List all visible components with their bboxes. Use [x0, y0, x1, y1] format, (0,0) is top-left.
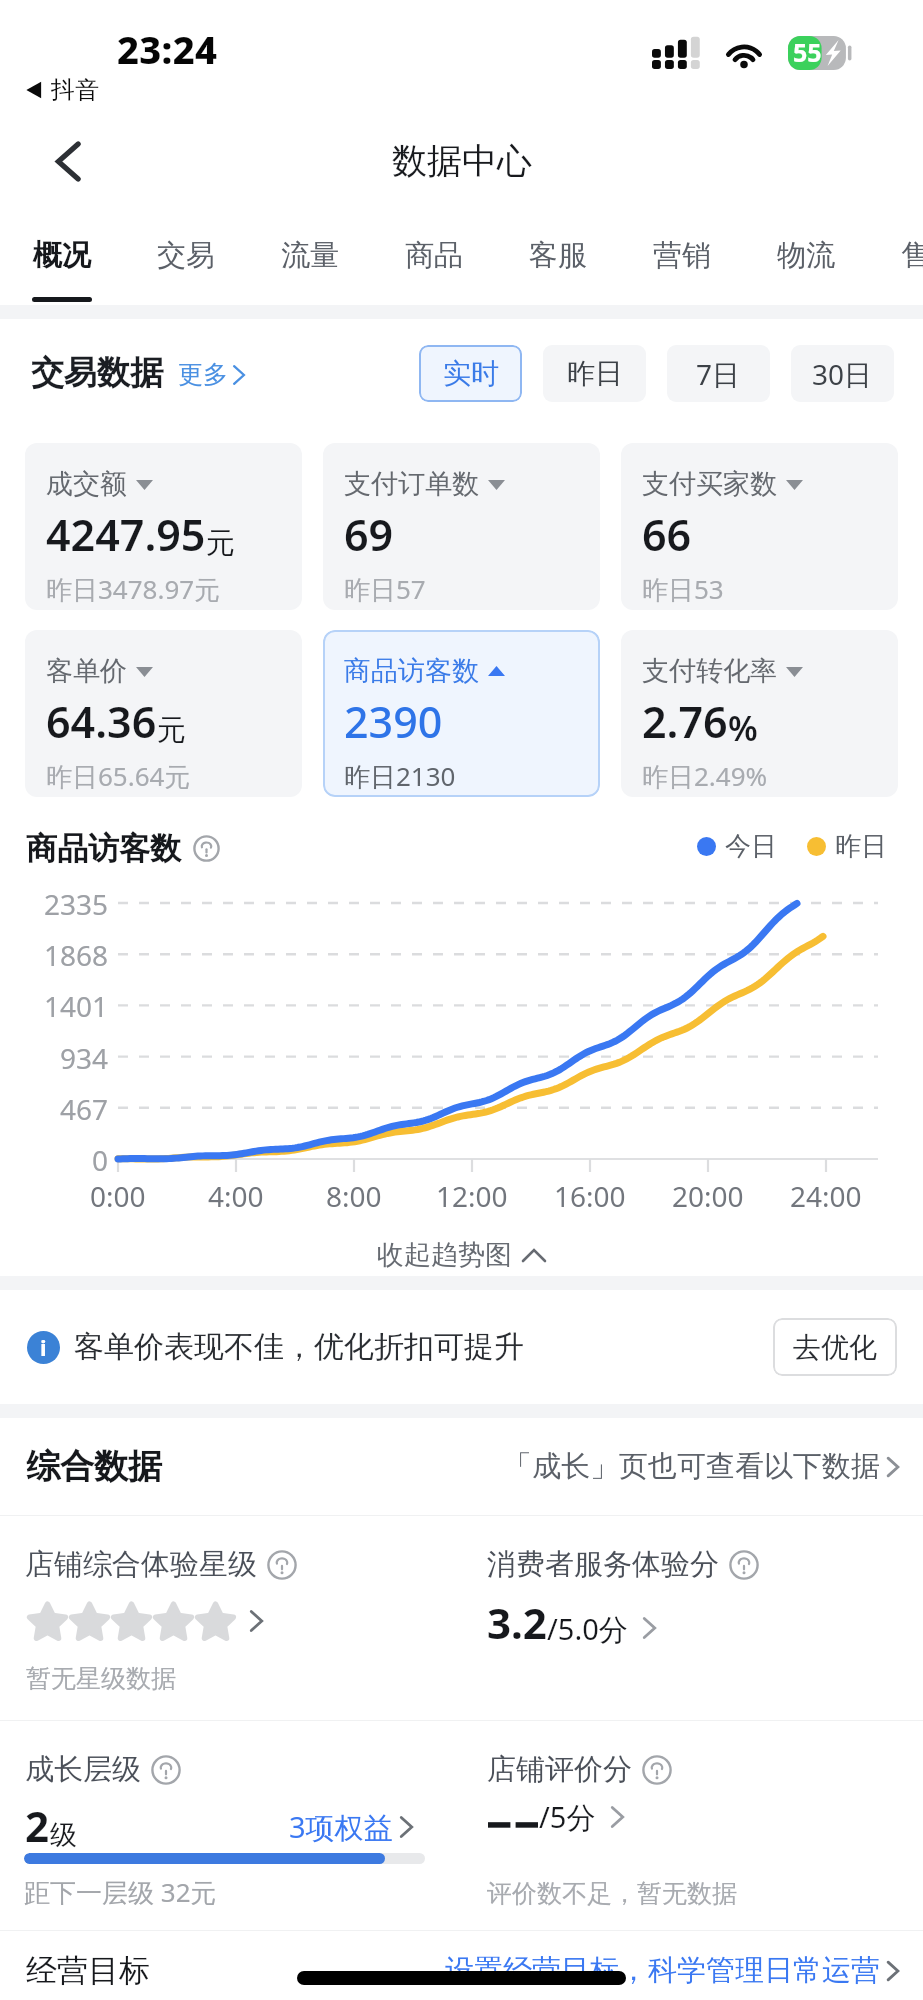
button[interactable]: 更多 [178, 359, 246, 390]
staticText: 评价数不足，暂无数据 [487, 1878, 737, 1909]
staticText: 概况 [33, 237, 91, 274]
staticText: 昨日53 [642, 571, 724, 607]
staticText: 支付订单数 [344, 467, 479, 501]
button[interactable]: 7日 [667, 345, 770, 402]
button[interactable]: 售后 [868, 210, 923, 305]
staticText: 69 [344, 505, 394, 564]
button[interactable]: 客单价 [25, 630, 302, 797]
button[interactable]: 客服 [496, 210, 620, 305]
button[interactable]: 成交额 [25, 443, 302, 610]
staticText: 支付转化率 [642, 654, 777, 688]
button[interactable]: 去优化 [773, 1318, 897, 1376]
staticText: 商品访客数 [26, 829, 181, 868]
staticText: 支付买家数 [642, 467, 777, 501]
button[interactable]: 收起趋势图 [377, 1238, 546, 1272]
staticText: 去优化 [793, 1330, 877, 1365]
button[interactable]: /5分 [487, 1799, 625, 1839]
button[interactable]: 3.2 [487, 1594, 657, 1651]
staticText: 467 [60, 1090, 109, 1126]
staticText: 消费者服务体验分 [487, 1546, 719, 1583]
button[interactable]: 概况 [0, 210, 124, 305]
staticText: 成长层级 [25, 1751, 141, 1788]
button[interactable]: 30日 [791, 345, 894, 402]
staticText: 昨日65.64元 [46, 758, 191, 794]
staticText: 昨日3478.97元 [46, 571, 221, 607]
staticText: 抖音 [51, 75, 99, 105]
staticText: 交易数据 [31, 352, 163, 394]
button[interactable]: 3项权益 [289, 1807, 414, 1847]
staticText: 昨日2.49% [642, 758, 768, 794]
staticText: 23:24 [117, 23, 218, 75]
staticText: 66 [642, 505, 692, 564]
button[interactable]: 流量 [248, 210, 372, 305]
staticText: i [40, 1332, 47, 1362]
staticText: 物流 [777, 237, 835, 274]
staticText: 元 [157, 712, 186, 749]
staticText: 0 [92, 1141, 109, 1177]
staticText: 设置经营目标，科学管理日常运营 [445, 1952, 880, 1989]
staticText: 934 [60, 1039, 109, 1075]
button[interactable]: 支付转化率 [621, 630, 898, 797]
staticText: 1868 [44, 936, 109, 972]
staticText: % [728, 705, 758, 751]
staticText: 店铺综合体验星级 [25, 1546, 257, 1583]
staticText: 12:00 [436, 1177, 508, 1215]
staticText: 30日 [812, 355, 873, 393]
staticText: 暂无星级数据 [26, 1663, 176, 1694]
staticText: 客单价表现不佳，优化折扣可提升 [74, 1328, 524, 1366]
staticText: 16:00 [554, 1177, 626, 1215]
staticText: 商品访客数 [344, 654, 479, 688]
staticText: 昨日 [835, 830, 887, 863]
staticText: 4247.95 [46, 505, 206, 564]
staticText: 昨日2130 [344, 758, 456, 794]
staticText: 1401 [44, 987, 109, 1023]
staticText: 流量 [281, 237, 339, 274]
staticText: 2 [25, 1797, 50, 1854]
staticText: 64.36 [46, 692, 157, 751]
button[interactable]: 交易 [124, 210, 248, 305]
staticText: 商品 [405, 237, 463, 274]
staticText: 2335 [44, 885, 109, 921]
button[interactable]: 支付订单数 [323, 443, 600, 610]
staticText: 交易 [157, 237, 215, 274]
staticText: 今日 [725, 830, 777, 863]
staticText: 55 [793, 35, 822, 69]
button[interactable]: 设置经营目标，科学管理日常运营 [445, 1952, 900, 1989]
staticText: 成交额 [46, 467, 127, 501]
staticText: 昨日 [567, 356, 623, 391]
staticText: 20:00 [672, 1177, 744, 1215]
staticText: 营销 [653, 237, 711, 274]
button[interactable]: Back [34, 127, 102, 195]
button[interactable]: 实时 [419, 345, 522, 402]
staticText: 「成长」页也可查看以下数据 [503, 1448, 880, 1485]
button[interactable]: 商品访客数 [323, 630, 600, 797]
button[interactable]: 商品 [372, 210, 496, 305]
staticText: /5.0分 [547, 1609, 628, 1649]
staticText: 距下一层级 32元 [24, 1874, 217, 1910]
staticText: 综合数据 [26, 1445, 162, 1488]
button[interactable]: 「成长」页也可查看以下数据 [503, 1448, 900, 1485]
staticText: 级 [50, 1818, 77, 1852]
staticText: 24:00 [790, 1177, 862, 1215]
staticText: /5分 [539, 1797, 596, 1837]
staticText: 店铺评价分 [487, 1751, 632, 1788]
staticText: 0:00 [90, 1177, 146, 1215]
staticText: 元 [206, 525, 235, 562]
button[interactable]: 营销 [620, 210, 744, 305]
staticText: 售后 [901, 237, 923, 274]
button[interactable]: 物流 [744, 210, 868, 305]
staticText: 7日 [696, 355, 741, 393]
staticText: 2390 [344, 692, 443, 751]
staticText: 经营目标 [26, 1951, 150, 1990]
button[interactable]: 支付买家数 [621, 443, 898, 610]
button[interactable] [27, 1601, 264, 1641]
staticText: 收起趋势图 [377, 1238, 512, 1272]
staticText: 客服 [529, 237, 587, 274]
staticText: 更多 [178, 359, 228, 390]
staticText: 3.2 [487, 1594, 547, 1651]
staticText: 昨日57 [344, 571, 426, 607]
staticText: 4:00 [208, 1177, 264, 1215]
button[interactable]: 昨日 [543, 345, 646, 402]
staticText: 客单价 [46, 654, 127, 688]
staticText: 实时 [443, 356, 499, 391]
